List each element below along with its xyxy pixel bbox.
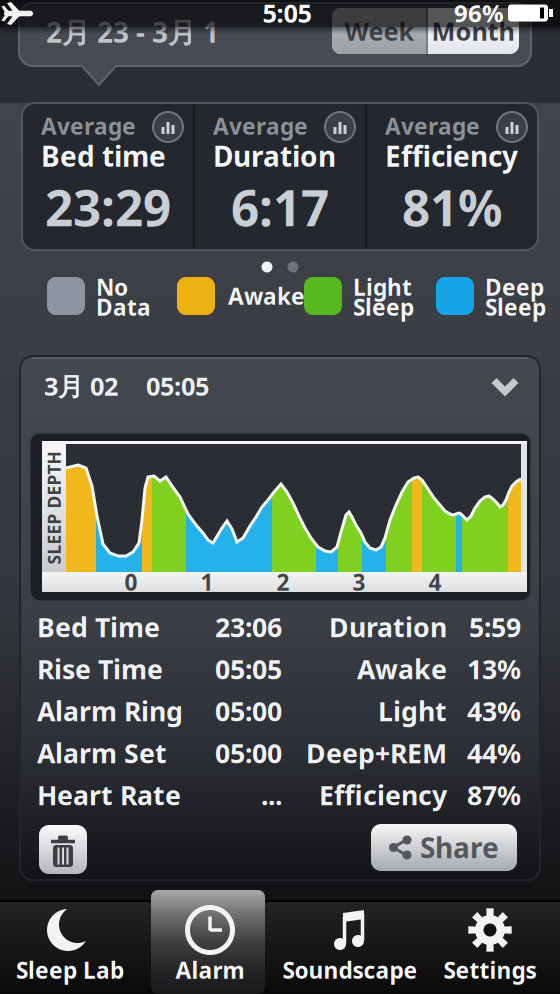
button[interactable]: Collapse entry bbox=[22, 356, 538, 406]
staticText: Average bbox=[41, 111, 136, 141]
staticText: Soundscape bbox=[282, 955, 417, 985]
staticText: Settings bbox=[443, 955, 536, 985]
staticText: 5:59 bbox=[469, 609, 521, 645]
button[interactable]: Soundscape bbox=[281, 902, 419, 994]
staticText: SLEEP DEPTH bbox=[0, 496, 110, 519]
staticText: Duration bbox=[213, 137, 336, 175]
staticText: 1 bbox=[200, 567, 213, 597]
staticText: Efficiency bbox=[319, 777, 447, 813]
staticText: No bbox=[96, 272, 128, 302]
staticText: 3 bbox=[352, 567, 365, 597]
staticText: 81% bbox=[402, 174, 502, 240]
staticText: 05:05 bbox=[215, 651, 282, 687]
staticText: Light bbox=[353, 272, 412, 302]
staticText: Heart Rate bbox=[37, 777, 181, 813]
staticText: Bed Time bbox=[37, 609, 160, 645]
staticText: Share bbox=[420, 829, 499, 866]
staticText: 13% bbox=[467, 651, 521, 687]
staticText: Week bbox=[344, 14, 414, 48]
staticText: 44% bbox=[467, 735, 521, 771]
staticText: Rise Time bbox=[37, 651, 163, 687]
button[interactable]: Share bbox=[371, 824, 517, 871]
staticText: Sleep bbox=[353, 292, 414, 322]
button[interactable]: Month bbox=[427, 8, 519, 54]
button[interactable]: Statistics bbox=[497, 112, 527, 142]
staticText: Average bbox=[213, 111, 308, 141]
staticText: 2月 23 - 3月 1 bbox=[46, 13, 219, 51]
button[interactable]: Sleep Lab bbox=[1, 902, 139, 994]
button[interactable]: Settings bbox=[421, 902, 559, 994]
staticText: 96% bbox=[454, 0, 504, 29]
button[interactable]: Delete bbox=[39, 825, 87, 874]
button[interactable]: Alarm bbox=[141, 902, 279, 994]
staticText: Awake bbox=[228, 281, 305, 311]
staticText: Alarm bbox=[175, 955, 244, 985]
staticText: 43% bbox=[467, 693, 521, 729]
staticText: 05:00 bbox=[215, 693, 282, 729]
staticText: Deep bbox=[485, 272, 544, 302]
button[interactable]: Statistics bbox=[325, 112, 355, 142]
staticText: 05:00 bbox=[215, 735, 282, 771]
staticText: Average bbox=[385, 111, 480, 141]
staticText: Sleep bbox=[485, 292, 546, 322]
staticText: 2 bbox=[276, 567, 289, 597]
staticText: ... bbox=[261, 777, 282, 813]
staticText: Deep+REM bbox=[306, 735, 447, 771]
staticText: Awake bbox=[357, 651, 447, 687]
staticText: 6:17 bbox=[231, 174, 329, 240]
staticText: Bed time bbox=[41, 137, 166, 175]
staticText: 3月 02 05:05 bbox=[44, 369, 209, 403]
staticText: 23:06 bbox=[215, 609, 282, 645]
staticText: Month bbox=[431, 14, 514, 48]
button[interactable]: Week bbox=[332, 8, 427, 54]
button[interactable]: Statistics bbox=[153, 112, 183, 142]
staticText: 87% bbox=[467, 777, 521, 813]
staticText: 0 bbox=[124, 567, 137, 597]
staticText: 23:29 bbox=[45, 174, 171, 240]
staticText: Duration bbox=[329, 609, 447, 645]
staticText: Alarm Set bbox=[37, 735, 167, 771]
staticText: 5:05 bbox=[262, 0, 311, 30]
staticText: Light bbox=[378, 693, 447, 729]
staticText: 4 bbox=[428, 567, 441, 597]
staticText: Alarm Ring bbox=[37, 693, 183, 729]
staticText: Sleep Lab bbox=[16, 955, 124, 985]
staticText: Efficiency bbox=[385, 137, 518, 175]
staticText: Data bbox=[96, 292, 151, 322]
